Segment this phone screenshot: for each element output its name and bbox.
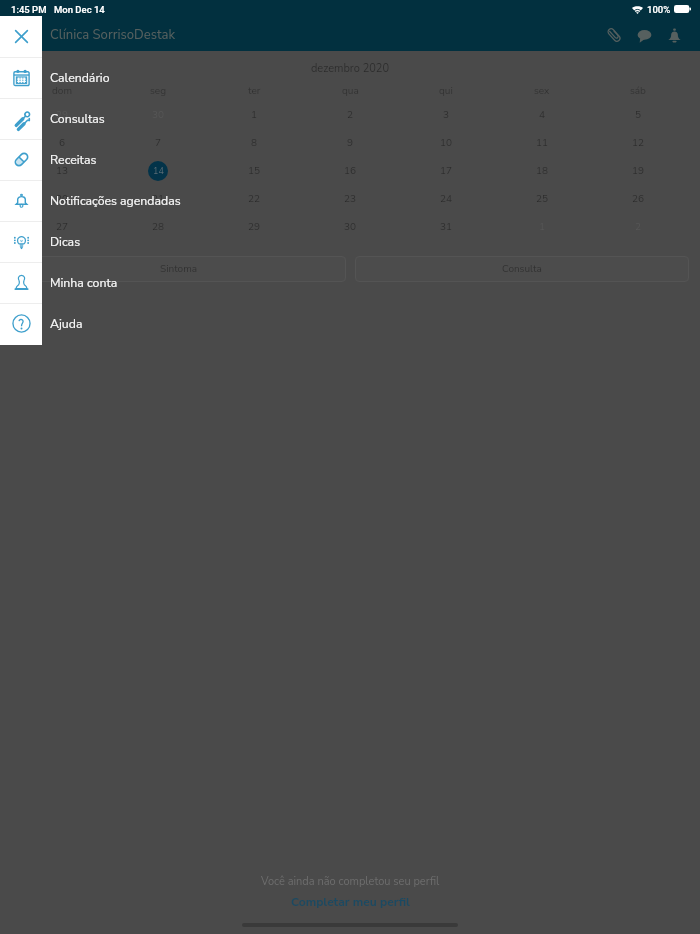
staticText: 27 [56, 220, 68, 234]
button[interactable]: Sintoma [12, 256, 346, 282]
staticText: 30 [344, 220, 356, 234]
button[interactable]: Messages [629, 20, 659, 50]
button[interactable]: 21 [110, 185, 206, 213]
staticText: 13 [56, 164, 68, 178]
staticText: 3 [443, 108, 449, 122]
staticText: 26 [632, 192, 644, 206]
staticText: Ajuda [50, 316, 83, 333]
staticText: 100% [647, 4, 671, 15]
staticText: Minha conta [50, 275, 118, 292]
staticText: 16 [344, 164, 356, 178]
staticText: Consultas [50, 111, 105, 128]
staticText: Dicas [50, 234, 81, 251]
staticText: Consulta [502, 262, 542, 276]
staticText: qua [342, 84, 359, 98]
staticText: 1:45 PM [11, 4, 47, 15]
staticText: sáb [630, 84, 646, 98]
button[interactable]: 14 [110, 157, 206, 185]
button[interactable]: Tips [0, 221, 42, 262]
button[interactable]: Calendário [50, 58, 110, 99]
staticText: 25 [536, 192, 548, 206]
button[interactable]: Dicas [50, 222, 81, 263]
staticText: 2 [347, 108, 353, 122]
staticText: Você ainda não completou seu perfil [261, 874, 440, 889]
staticText: 17 [440, 164, 452, 178]
staticText: 8 [251, 136, 257, 150]
button[interactable]: Help [0, 303, 42, 344]
button[interactable]: Prescriptions [0, 139, 42, 180]
button[interactable]: Minha conta [50, 263, 118, 304]
staticText: 5 [635, 108, 641, 122]
staticText: 18 [536, 164, 548, 178]
button[interactable]: Calendar [0, 57, 42, 98]
staticText: dezembro 2020 [0, 61, 700, 76]
staticText: 10 [440, 136, 452, 150]
staticText: 20 [56, 192, 68, 206]
button[interactable]: Scheduled notifications [0, 180, 42, 221]
staticText: seg [150, 84, 166, 98]
button[interactable]: Attachments [599, 20, 629, 50]
button[interactable]: 13 [14, 157, 110, 185]
staticText: 31 [440, 220, 452, 234]
button[interactable]: Completar meu perfil [291, 894, 410, 910]
button[interactable]: Notifications [659, 20, 689, 50]
button[interactable]: Notificações agendadas [50, 181, 181, 222]
button[interactable]: 6 [14, 129, 110, 157]
button[interactable]: Ajuda [50, 304, 83, 345]
button[interactable]: Receitas [50, 140, 97, 181]
button[interactable]: 20 [14, 185, 110, 213]
staticText: Completar meu perfil [291, 894, 410, 910]
staticText: 6 [59, 136, 65, 150]
staticText: Receitas [50, 152, 97, 169]
staticText: 29 [248, 220, 260, 234]
staticText: 19 [632, 164, 644, 178]
staticText: ter [248, 84, 261, 98]
button[interactable]: My account [0, 262, 42, 303]
button[interactable]: Appointments [0, 98, 42, 139]
button[interactable]: 29 [14, 101, 110, 129]
staticText: 14 [153, 165, 164, 177]
button[interactable]: 27 [14, 213, 110, 241]
button[interactable]: Consultas [50, 99, 105, 140]
staticText: Sintoma [160, 262, 198, 276]
staticText: Mon Dec 14 [54, 4, 105, 15]
staticText: 4 [539, 108, 545, 122]
button[interactable]: Close menu [0, 16, 42, 57]
staticText: 28 [152, 220, 164, 234]
staticText: 11 [536, 136, 548, 150]
staticText: Notificações agendadas [50, 193, 181, 210]
staticText: qui [439, 84, 453, 98]
